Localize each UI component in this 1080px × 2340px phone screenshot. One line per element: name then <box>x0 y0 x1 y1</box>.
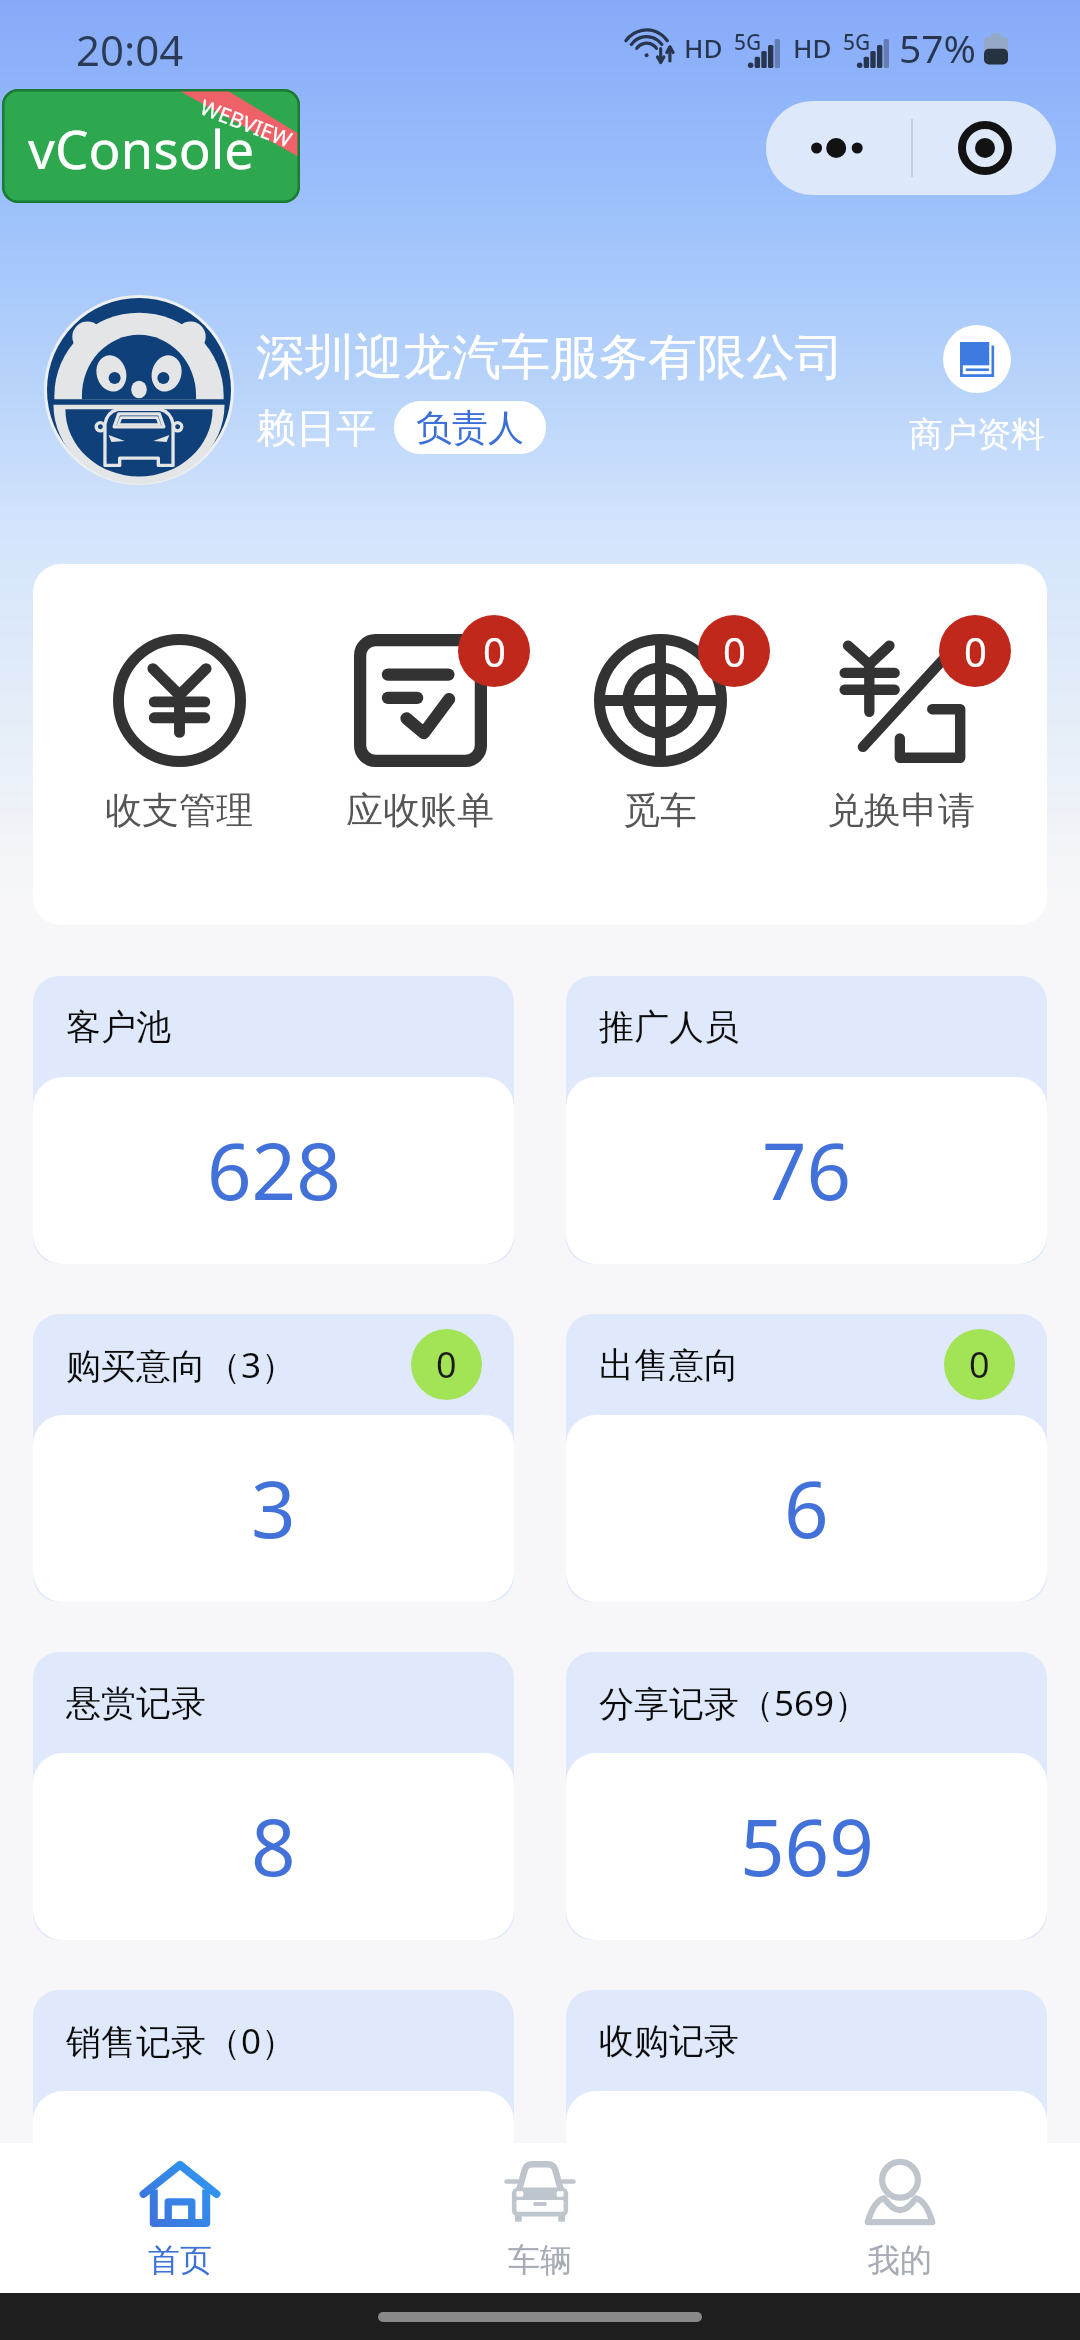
staticText: 出售意向 <box>599 1343 739 1387</box>
staticText: 车辆 <box>508 2240 572 2280</box>
staticText: 收购记录 <box>599 2019 739 2063</box>
staticText: 57% <box>899 21 977 74</box>
staticText: 商户资料 <box>909 413 1045 456</box>
button[interactable]: 商户资料 <box>909 325 1045 456</box>
staticText: 0 <box>436 1340 457 1389</box>
staticText: 0 <box>964 624 987 678</box>
staticText: 销售记录（0） <box>66 2017 297 2065</box>
staticText: 76 <box>762 1117 852 1223</box>
staticText: 569 <box>740 1793 874 1899</box>
staticText: 觅车 <box>623 787 697 834</box>
staticText: 应收账单 <box>346 787 494 834</box>
staticText: 负责人 <box>416 405 524 450</box>
staticText: 8 <box>251 1793 296 1899</box>
button[interactable]: 收支管理 <box>69 615 289 834</box>
button[interactable]: 购买意向（3） <box>33 1314 514 1602</box>
staticText: 0 <box>483 624 506 678</box>
staticText: 客户池 <box>66 1005 171 1049</box>
staticText: 分享记录（569） <box>599 1679 870 1727</box>
staticText: 0 <box>723 624 746 678</box>
button[interactable]: 0 <box>791 615 1011 834</box>
staticText: 3 <box>251 1455 296 1561</box>
staticText: 推广人员 <box>599 1005 739 1049</box>
button[interactable]: 出售意向 <box>566 1314 1047 1602</box>
button[interactable]: 分享记录（569） <box>566 1652 1047 1940</box>
staticText: 5G <box>843 28 871 57</box>
staticText: 我的 <box>868 2240 932 2280</box>
button[interactable]: 收购记录 <box>566 1990 1047 2278</box>
button[interactable]: 0 <box>550 615 770 834</box>
staticText: 收支管理 <box>105 787 253 834</box>
staticText: 首页 <box>148 2240 212 2280</box>
staticText: HD <box>793 30 832 65</box>
staticText: 赖日平 <box>256 403 376 453</box>
staticText: WEBVIEW <box>196 93 296 154</box>
button[interactable]: 悬赏记录 <box>33 1652 514 1940</box>
button[interactable]: 我的 <box>720 2143 1080 2293</box>
button[interactable]: 首页 <box>0 2143 360 2293</box>
button[interactable]: 客户池 <box>33 976 514 1264</box>
staticText: 兑换申请 <box>827 787 975 834</box>
staticText: 628 <box>207 1117 341 1223</box>
staticText: 5G <box>734 28 762 57</box>
staticText: HD <box>684 30 723 65</box>
staticText: 购买意向（3） <box>66 1341 297 1389</box>
staticText: 0 <box>969 1340 990 1389</box>
button[interactable]: 0 <box>310 615 530 834</box>
button[interactable]: More <box>766 101 911 195</box>
staticText: 20:04 <box>76 21 184 78</box>
button[interactable]: vConsole <box>2 89 300 203</box>
button[interactable]: 推广人员 <box>566 976 1047 1264</box>
button[interactable]: 销售记录（0） <box>33 1990 514 2278</box>
button[interactable]: Avatar <box>44 295 234 485</box>
staticText: 悬赏记录 <box>66 1681 206 1725</box>
button[interactable]: 负责人 <box>394 401 546 454</box>
staticText: vConsole <box>28 112 255 184</box>
staticText: 深圳迎龙汽车服务有限公司 <box>256 327 844 389</box>
button[interactable]: 车辆 <box>360 2143 720 2293</box>
staticText: 6 <box>784 1455 829 1561</box>
button[interactable]: Close <box>913 101 1056 195</box>
